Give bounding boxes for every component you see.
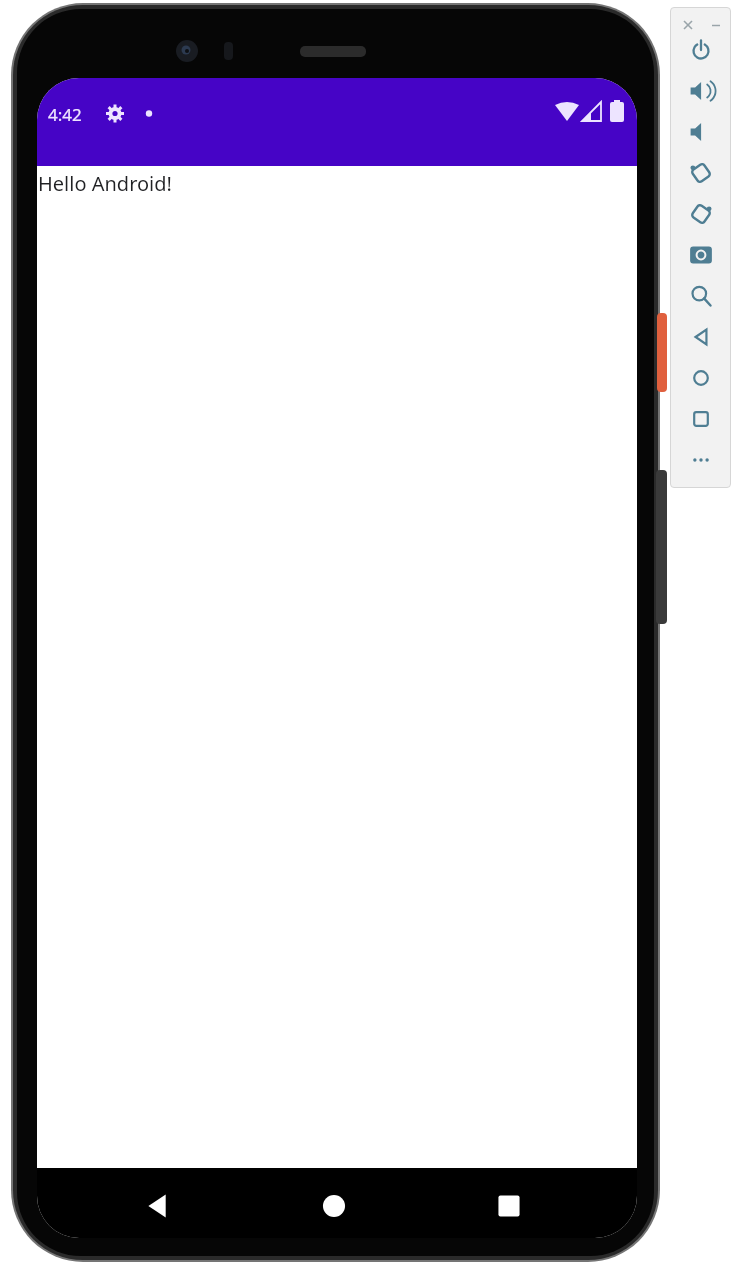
button[interactable] [670, 316, 731, 357]
staticText: Hello Android! [38, 170, 172, 197]
button[interactable] [670, 111, 731, 152]
button[interactable] [670, 275, 731, 316]
button[interactable] [485, 1182, 533, 1230]
button[interactable] [670, 70, 731, 111]
button[interactable] [670, 152, 731, 193]
button[interactable] [670, 234, 731, 275]
button[interactable] [310, 1182, 358, 1230]
staticText: 4:42 [48, 103, 82, 122]
button[interactable] [670, 398, 731, 439]
button[interactable] [670, 29, 731, 70]
button[interactable] [670, 439, 731, 480]
button[interactable] [670, 357, 731, 398]
button[interactable] [670, 193, 731, 234]
button[interactable] [134, 1182, 182, 1230]
